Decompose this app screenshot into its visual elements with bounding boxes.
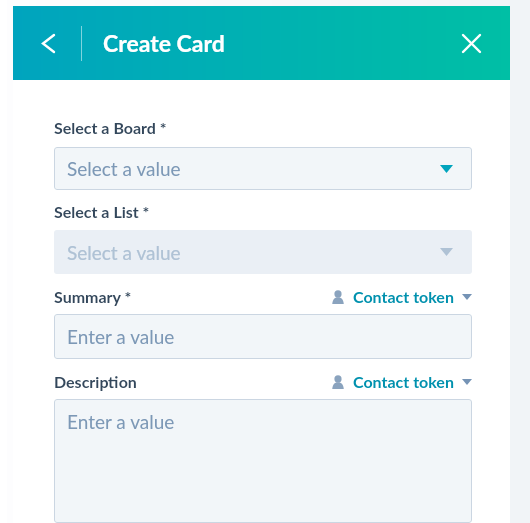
staticText: Enter a value xyxy=(67,325,175,348)
staticText: Summary * xyxy=(54,287,132,306)
staticText: Select a value xyxy=(67,241,181,264)
staticText: Select a value xyxy=(67,157,181,180)
staticText: Description xyxy=(54,372,137,391)
button[interactable]: Contact token xyxy=(332,287,472,306)
staticText: Enter a value xyxy=(67,410,175,433)
button[interactable]: Close xyxy=(450,22,492,64)
button[interactable]: Select a value xyxy=(54,230,472,274)
staticText: Contact token xyxy=(353,372,454,391)
button[interactable]: Contact token xyxy=(332,372,472,391)
staticText: Create Card xyxy=(103,29,225,57)
staticText: Select a Board * xyxy=(54,118,167,137)
button[interactable]: Enter a value xyxy=(54,399,472,523)
button[interactable]: Back xyxy=(27,22,69,64)
button[interactable]: Select a value xyxy=(54,147,472,190)
staticText: Select a List * xyxy=(54,202,150,221)
staticText: Contact token xyxy=(353,287,454,306)
button[interactable]: Enter a value xyxy=(54,314,472,359)
